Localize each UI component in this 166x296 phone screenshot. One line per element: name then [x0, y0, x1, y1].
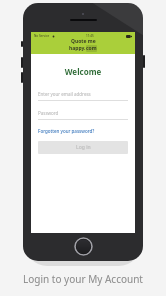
staticText: 11:45: [86, 34, 94, 38]
button[interactable]: Log in: [38, 141, 128, 154]
staticText: happy.: [69, 45, 86, 52]
staticText: Enter your email address: [38, 91, 91, 97]
staticText: Log in: [76, 144, 91, 151]
button[interactable]: Enter your email address: [38, 91, 128, 101]
button[interactable]: Forgotten your password?: [38, 128, 95, 134]
staticText: Forgotten your password?: [38, 128, 95, 134]
staticText: Quote me: [71, 38, 96, 45]
staticText: Login to your My Account: [0, 272, 166, 286]
staticText: com: [86, 45, 97, 52]
button[interactable]: Home: [74, 237, 93, 256]
staticText: Welcome: [38, 66, 128, 77]
button[interactable]: Password: [38, 110, 128, 120]
staticText: No Service: [34, 34, 50, 38]
staticText: Password: [38, 110, 59, 116]
